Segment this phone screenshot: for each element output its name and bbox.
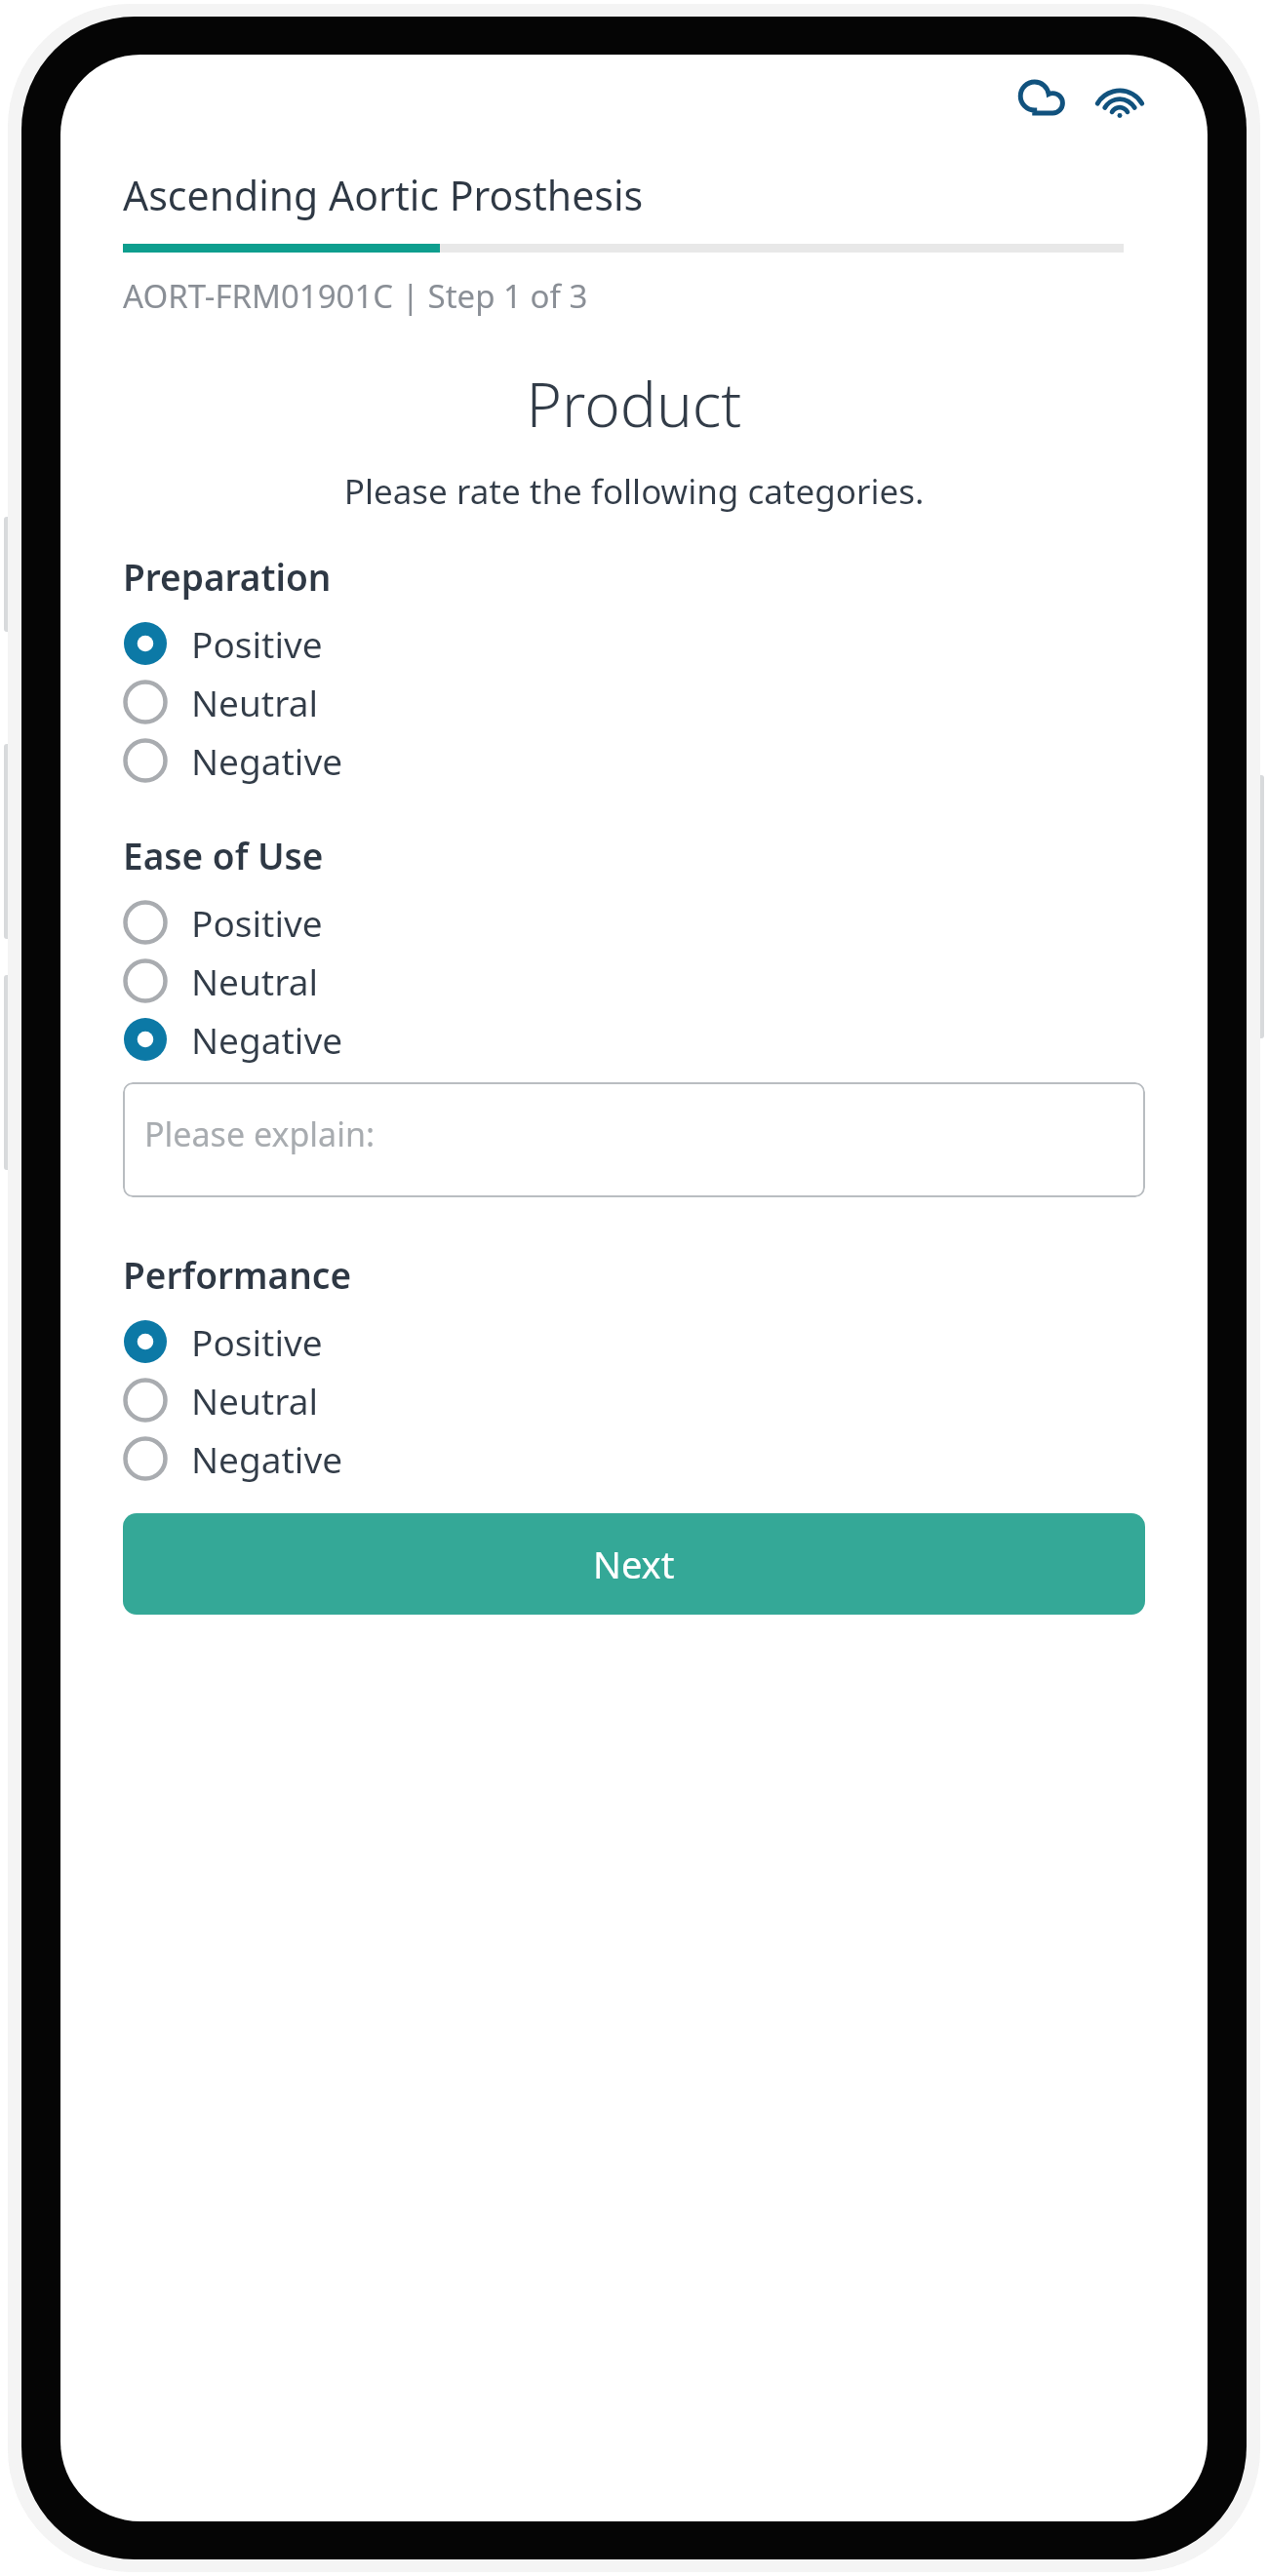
staticText: Please explain:: [144, 1112, 376, 1156]
staticText: Neutral: [191, 956, 319, 1005]
staticText: Performance: [123, 1250, 352, 1299]
staticText: Negative: [191, 1434, 343, 1483]
staticText: Positive: [191, 619, 323, 668]
button[interactable]: Negative: [60, 1429, 1208, 1488]
staticText: Ascending Aortic Prosthesis: [123, 168, 644, 222]
staticText: Preparation: [123, 552, 332, 601]
button[interactable]: Neutral: [60, 673, 1208, 731]
button[interactable]: Cloud sync: [1012, 68, 1075, 131]
staticText: Neutral: [191, 678, 319, 726]
button[interactable]: Positive: [60, 1312, 1208, 1371]
button[interactable]: Neutral: [60, 1371, 1208, 1429]
button[interactable]: Negative: [60, 731, 1208, 790]
button[interactable]: Please explain:: [123, 1082, 1145, 1197]
staticText: AORT-FRM01901C | Step 1 of 3: [123, 274, 588, 318]
staticText: Please rate the following categories.: [60, 468, 1208, 515]
staticText: Ease of Use: [123, 831, 324, 879]
button[interactable]: Negative: [60, 1010, 1208, 1069]
button[interactable]: Neutral: [60, 952, 1208, 1010]
button[interactable]: Next: [123, 1513, 1145, 1615]
staticText: Positive: [191, 1317, 323, 1366]
staticText: Product: [60, 363, 1208, 445]
button[interactable]: Positive: [60, 614, 1208, 673]
staticText: Negative: [191, 736, 343, 785]
staticText: Neutral: [191, 1376, 319, 1425]
button[interactable]: Wi-Fi: [1089, 68, 1151, 131]
staticText: Next: [593, 1539, 675, 1589]
staticText: Positive: [191, 898, 323, 947]
button[interactable]: Positive: [60, 893, 1208, 952]
staticText: Negative: [191, 1015, 343, 1064]
